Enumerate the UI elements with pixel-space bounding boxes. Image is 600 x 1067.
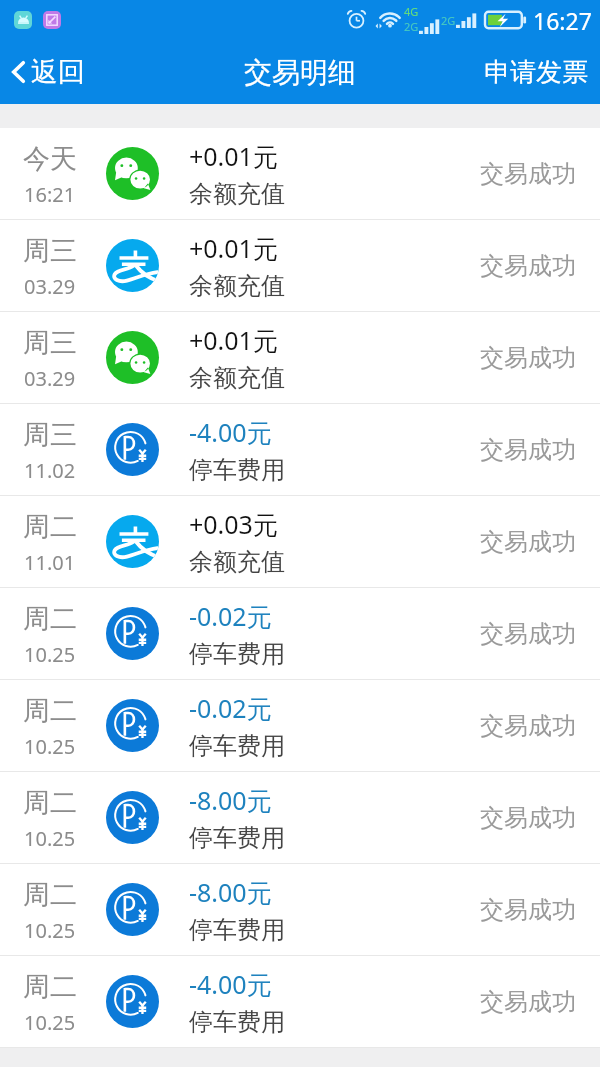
staticText: 2G	[404, 19, 419, 34]
button[interactable]: 周三	[0, 404, 600, 496]
staticText: 周二	[23, 970, 77, 1004]
staticText: 16:21	[24, 181, 76, 208]
staticText: 周二	[23, 510, 77, 544]
staticText: 交易成功	[480, 711, 576, 741]
staticText: 余额充值	[189, 547, 285, 577]
staticText: 今天	[23, 142, 77, 176]
staticText: 停车费用	[189, 731, 285, 761]
staticText: 余额充值	[189, 271, 285, 301]
staticText: -0.02元	[189, 691, 272, 725]
button[interactable]: 周二	[0, 772, 600, 864]
staticText: 10.25	[24, 641, 76, 668]
staticText: 停车费用	[189, 455, 285, 485]
staticText: 周三	[23, 326, 77, 360]
staticText: -0.02元	[189, 599, 272, 633]
staticText: 交易成功	[480, 895, 576, 925]
staticText: 返回	[31, 55, 85, 89]
staticText: 余额充值	[189, 363, 285, 393]
staticText: 周二	[23, 694, 77, 728]
staticText: 11.01	[24, 549, 76, 576]
staticText: 交易成功	[480, 343, 576, 373]
staticText: 周三	[23, 234, 77, 268]
staticText: 交易成功	[480, 803, 576, 833]
staticText: -4.00元	[189, 415, 272, 449]
button[interactable]: 周二	[0, 956, 600, 1048]
button[interactable]: 申请发票	[470, 42, 600, 103]
staticText: -8.00元	[189, 783, 272, 817]
staticText: -8.00元	[189, 875, 272, 909]
staticText: 周二	[23, 602, 77, 636]
staticText: -4.00元	[189, 967, 272, 1001]
button[interactable]: 周二	[0, 864, 600, 956]
staticText: +0.01元	[189, 139, 278, 173]
staticText: 10.25	[24, 825, 76, 852]
staticText: +0.01元	[189, 231, 278, 265]
staticText: 余额充值	[189, 179, 285, 209]
staticText: 申请发票	[484, 56, 588, 89]
staticText: 03.29	[24, 365, 76, 392]
staticText: 停车费用	[189, 823, 285, 853]
staticText: 停车费用	[189, 1007, 285, 1037]
button[interactable]: 周二	[0, 680, 600, 772]
staticText: 4G	[404, 4, 419, 19]
button[interactable]: 周三	[0, 220, 600, 312]
staticText: 10.25	[24, 1009, 76, 1036]
staticText: 2G	[441, 13, 456, 28]
button[interactable]: 周二	[0, 496, 600, 588]
staticText: 周二	[23, 878, 77, 912]
staticText: +0.03元	[189, 507, 278, 541]
staticText: 交易成功	[480, 987, 576, 1017]
staticText: 交易成功	[480, 527, 576, 557]
staticText: 停车费用	[189, 915, 285, 945]
staticText: 交易成功	[480, 251, 576, 281]
staticText: 周三	[23, 418, 77, 452]
staticText: +0.01元	[189, 323, 278, 357]
button[interactable]: 周二	[0, 588, 600, 680]
staticText: 11.02	[24, 457, 76, 484]
staticText: 停车费用	[189, 639, 285, 669]
staticText: 交易成功	[480, 435, 576, 465]
button[interactable]: 今天	[0, 128, 600, 220]
staticText: 交易成功	[480, 159, 576, 189]
staticText: 10.25	[24, 733, 76, 760]
staticText: 16:27	[533, 5, 592, 36]
staticText: 周二	[23, 786, 77, 820]
button[interactable]: 周三	[0, 312, 600, 404]
staticText: 交易明细	[244, 55, 356, 90]
button[interactable]: 返回	[0, 43, 99, 101]
staticText: 10.25	[24, 917, 76, 944]
staticText: 交易成功	[480, 619, 576, 649]
staticText: 03.29	[24, 273, 76, 300]
